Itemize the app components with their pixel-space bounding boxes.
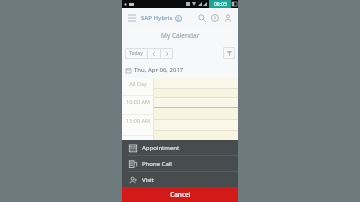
button[interactable]: Visit bbox=[122, 172, 238, 187]
button[interactable]: Search bbox=[195, 11, 208, 24]
staticText: Cancel bbox=[170, 190, 191, 199]
staticText: Visit bbox=[142, 176, 154, 184]
button[interactable]: Information bbox=[208, 11, 221, 24]
staticText: 12:00 AM bbox=[126, 138, 150, 145]
staticText: Thu, Apr 06, 2017 bbox=[134, 66, 184, 74]
button[interactable]: Profile bbox=[221, 11, 234, 24]
staticText: 6 bbox=[177, 16, 180, 22]
staticText: My Calendar bbox=[161, 31, 200, 40]
button[interactable]: Appointment bbox=[122, 140, 238, 155]
staticText: Appointment bbox=[142, 144, 180, 152]
button[interactable]: Today bbox=[125, 48, 147, 59]
button[interactable]: Filter bbox=[223, 47, 235, 59]
button[interactable]: Open navigation menu bbox=[126, 12, 138, 24]
staticText: All Day bbox=[129, 80, 147, 87]
button[interactable]: Cancel bbox=[122, 187, 238, 202]
staticText: 00:03 bbox=[214, 1, 227, 8]
staticText: 10:00 AM bbox=[126, 98, 150, 105]
staticText: Phone Call bbox=[142, 160, 172, 168]
staticText: Today bbox=[129, 50, 143, 57]
staticText: 11:00 AM bbox=[126, 117, 150, 124]
button[interactable]: Previous bbox=[148, 48, 160, 59]
staticText: SAP Hybris bbox=[141, 14, 173, 22]
button[interactable]: Phone Call bbox=[122, 156, 238, 171]
button[interactable]: Next bbox=[161, 48, 173, 59]
